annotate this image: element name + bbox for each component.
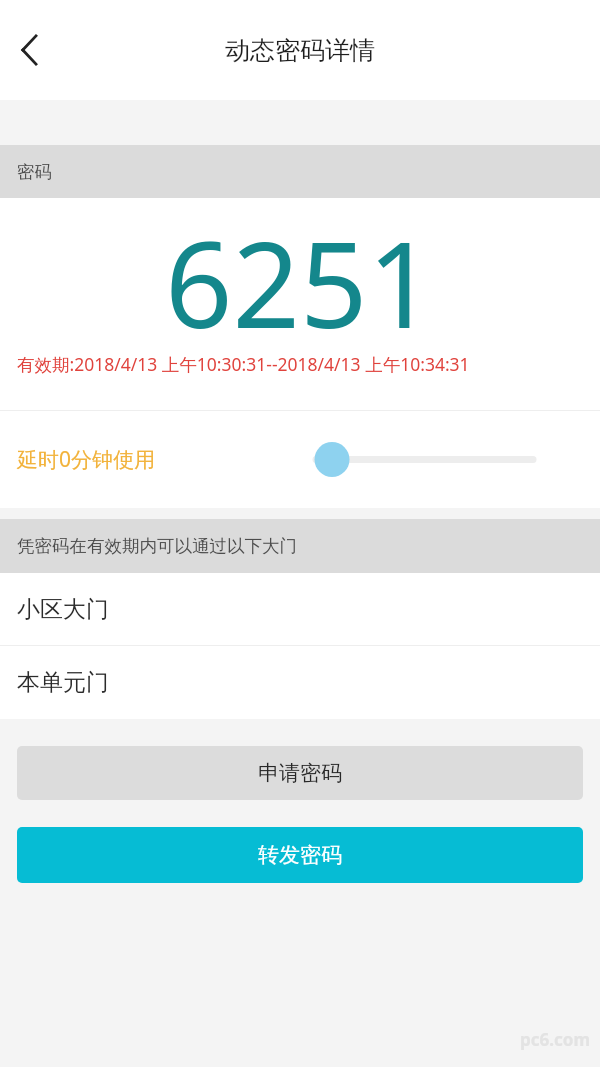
staticText: 凭密码在有效期内可以通过以下大门	[17, 535, 297, 557]
button[interactable]: 申请密码	[17, 746, 583, 800]
staticText: pc6.com	[520, 1028, 590, 1051]
button[interactable]: Back	[6, 26, 54, 74]
staticText: 申请密码	[258, 760, 342, 786]
staticText: 小区大门	[17, 595, 109, 624]
staticText: 有效期:2018/4/13 上午10:30:31--2018/4/13 上午10…	[17, 352, 470, 376]
staticText: 6251	[165, 202, 435, 363]
staticText: 转发密码	[258, 842, 342, 868]
button[interactable]: 延时0分钟使用	[0, 411, 600, 508]
staticText: 动态密码详情	[225, 35, 375, 66]
button[interactable]: 本单元门	[0, 646, 600, 719]
button[interactable]: 小区大门	[0, 573, 600, 645]
staticText: 密码	[17, 161, 52, 183]
button[interactable]: 转发密码	[17, 827, 583, 883]
staticText: 本单元门	[17, 668, 109, 697]
staticText: 延时0分钟使用	[17, 445, 156, 474]
